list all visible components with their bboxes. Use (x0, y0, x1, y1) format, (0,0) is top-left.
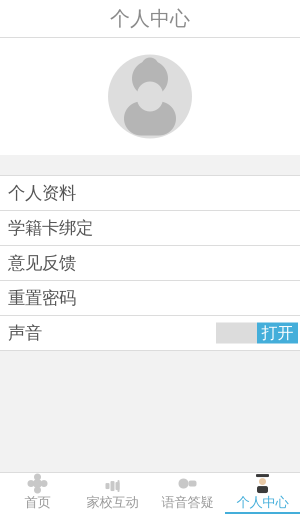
button[interactable]: 个人资料 (0, 176, 300, 210)
button[interactable]: 学籍卡绑定 (0, 211, 300, 245)
button[interactable]: 语音答疑 (150, 473, 225, 514)
staticText: 家校互动 (86, 494, 138, 510)
button[interactable]: 关闭声音 (216, 322, 257, 343)
staticText: 打开 (261, 323, 293, 343)
staticText: 学籍卡绑定 (8, 217, 93, 239)
staticText: 个人中心 (236, 494, 288, 510)
button[interactable]: 打开 (257, 322, 298, 343)
button[interactable]: 家校互动 (75, 473, 150, 514)
button[interactable]: 意见反馈 (0, 246, 300, 280)
staticText: 重置密码 (8, 287, 76, 309)
staticText: 意见反馈 (8, 252, 76, 274)
button[interactable]: 首页 (0, 473, 75, 514)
button[interactable]: 重置密码 (0, 281, 300, 315)
staticText: 语音答疑 (161, 494, 213, 510)
staticText: 个人资料 (8, 182, 76, 204)
staticText: 声音 (8, 322, 42, 344)
staticText: 首页 (24, 494, 50, 510)
button[interactable]: 个人中心 (225, 473, 300, 514)
staticText: 个人中心 (110, 6, 190, 31)
